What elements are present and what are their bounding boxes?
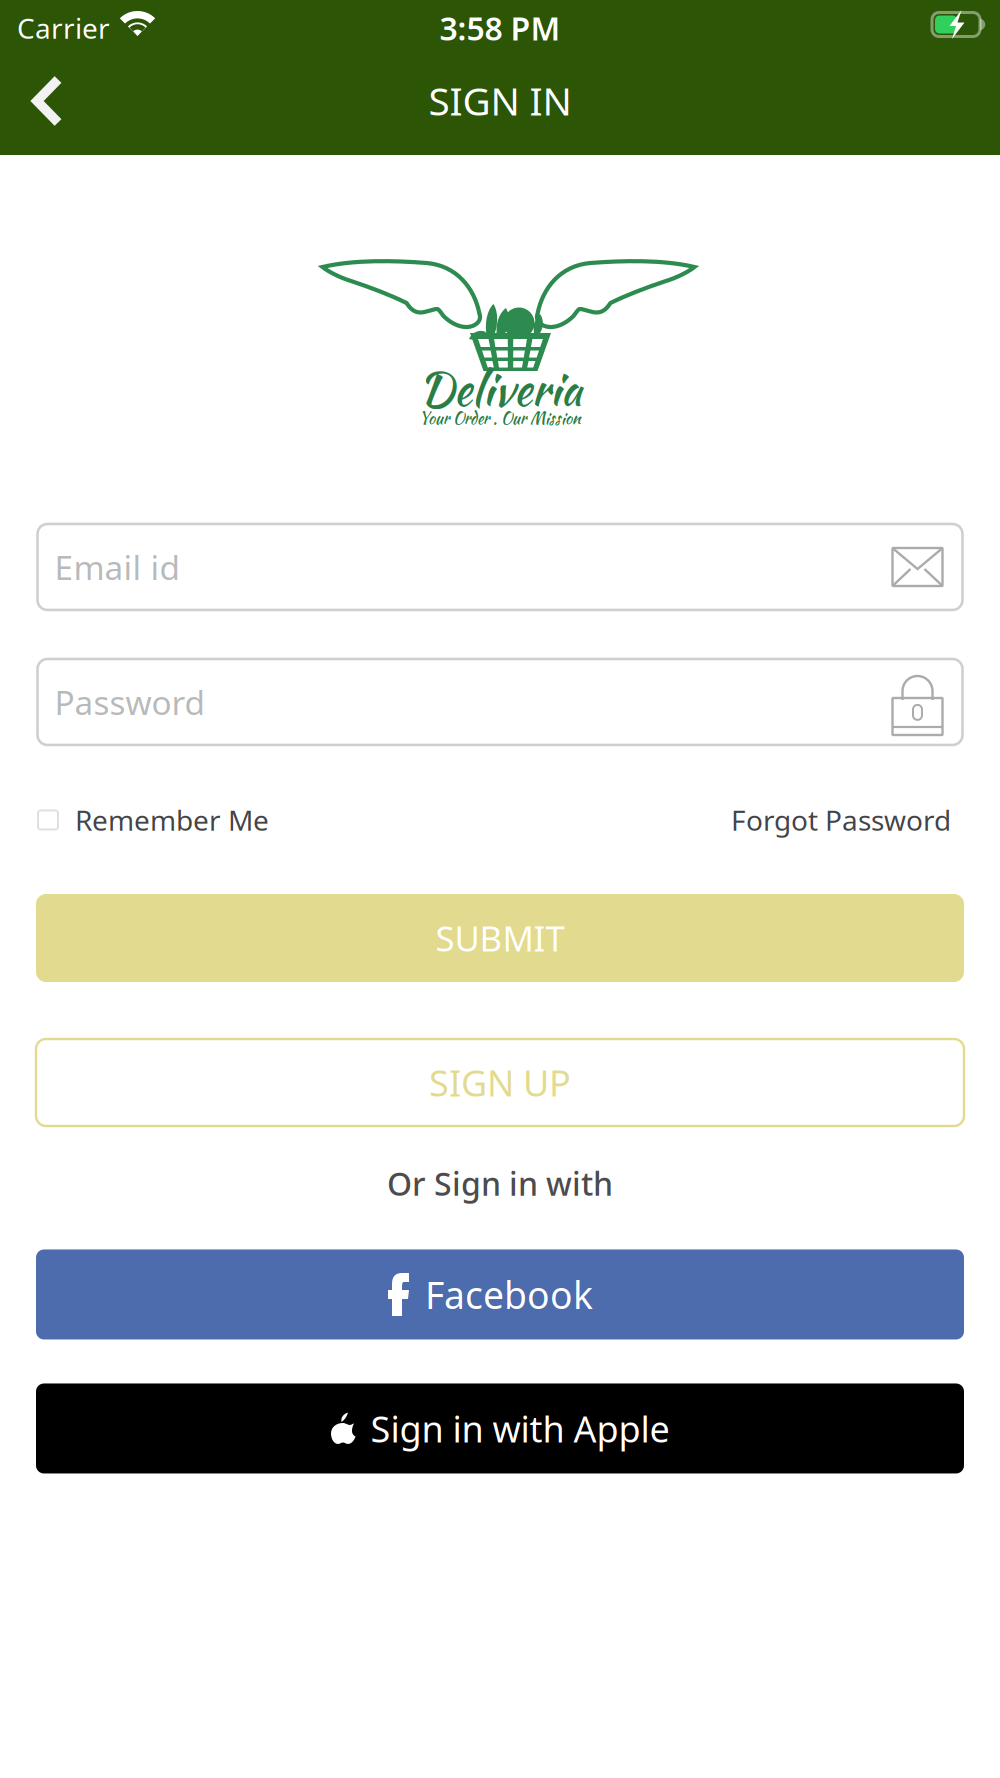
button[interactable]: Sign in with Apple	[36, 1383, 964, 1473]
staticText: Deliveria	[418, 356, 581, 422]
staticText: 3:58 PM	[439, 7, 560, 49]
button[interactable]: Remember Me	[38, 798, 269, 842]
staticText: SIGN UP	[429, 1059, 571, 1106]
staticText: Email id	[54, 545, 180, 589]
staticText: SUBMIT	[435, 915, 564, 961]
staticText: Or Sign in with	[387, 1162, 613, 1204]
staticText: Remember Me	[75, 801, 269, 839]
button[interactable]: SIGN UP	[36, 1039, 964, 1126]
button[interactable]: Back	[0, 56, 93, 155]
staticText: Forgot Password	[731, 801, 951, 839]
staticText: Carrier	[17, 9, 110, 47]
button[interactable]: Forgot Password	[731, 798, 951, 842]
staticText: Sign in with Apple	[370, 1405, 669, 1452]
staticText: SIGN IN	[428, 75, 571, 126]
button[interactable]: Facebook	[36, 1249, 964, 1339]
staticText: Password	[54, 680, 205, 724]
staticText: Your Order . Our Mission	[419, 407, 581, 430]
staticText: Facebook	[425, 1270, 593, 1319]
button[interactable]: SUBMIT	[36, 894, 964, 982]
